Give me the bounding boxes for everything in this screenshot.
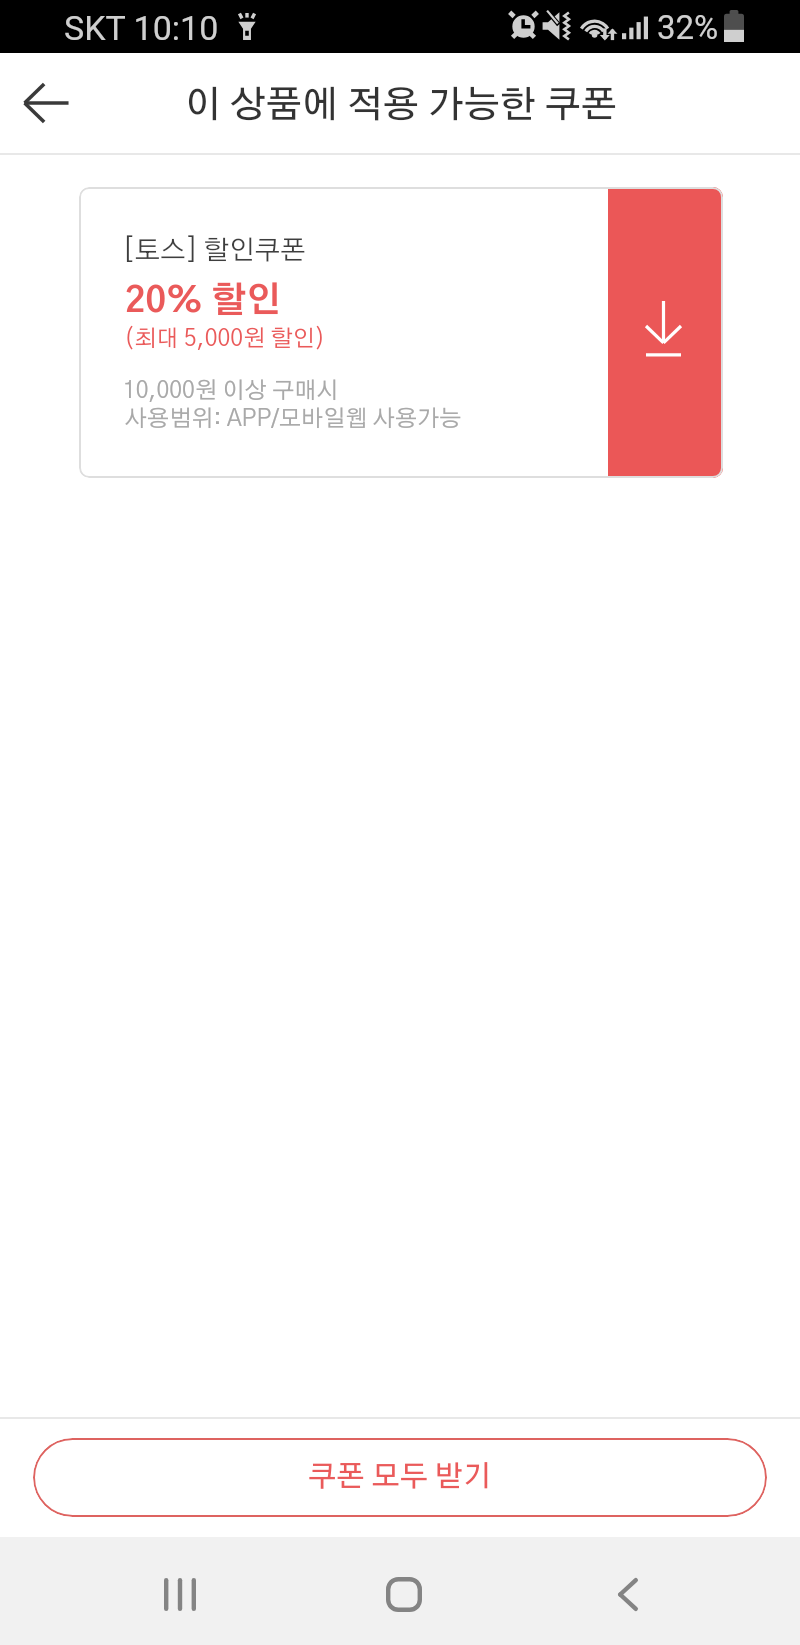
staticText: 사용범위: APP/모바일웹 사용가능: [125, 408, 462, 431]
button[interactable]: Back: [6, 63, 86, 143]
button[interactable]: [토스] 할인쿠폰: [79, 187, 723, 478]
staticText: 20% 할인: [125, 284, 282, 319]
staticText: (최대 5,000원 할인): [124, 328, 326, 351]
staticText: [토스] 할인쿠폰: [123, 238, 306, 265]
staticText: SKT 10:10: [64, 8, 219, 48]
staticText: 32%: [657, 8, 719, 47]
button[interactable]: Recent apps: [135, 1549, 225, 1639]
button[interactable]: Home: [359, 1549, 449, 1639]
staticText: 쿠폰 모두 받기: [308, 1463, 492, 1492]
button[interactable]: 쿠폰 모두 받기: [33, 1438, 767, 1517]
staticText: 이 상품에 적용 가능한 쿠폰: [185, 87, 618, 124]
button[interactable]: Download coupon: [608, 187, 723, 478]
button[interactable]: Back: [583, 1549, 673, 1639]
staticText: 10,000원 이상 구매시: [123, 380, 339, 403]
